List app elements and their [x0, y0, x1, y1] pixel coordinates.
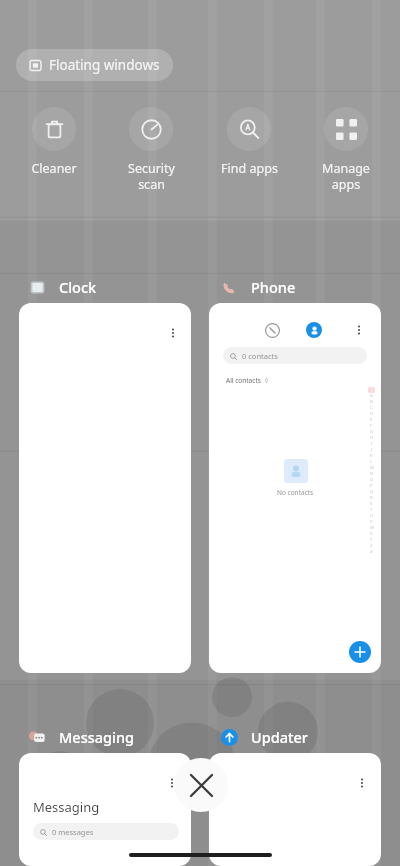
button[interactable]: Floating windows: [16, 49, 173, 81]
button[interactable]: Phone: [219, 275, 298, 299]
staticText: L: [370, 459, 373, 465]
button[interactable]: More options: [351, 322, 367, 338]
staticText: E: [370, 417, 373, 423]
button[interactable]: More options: [354, 775, 370, 791]
button[interactable]: More options: [19, 303, 191, 673]
staticText: P: [370, 483, 373, 489]
staticText: Cleaner: [31, 160, 77, 177]
staticText: F: [370, 423, 373, 429]
button[interactable]: Updater: [219, 725, 310, 749]
staticText: All contacts: [226, 376, 261, 385]
staticText: #: [370, 549, 373, 555]
staticText: K: [370, 453, 373, 459]
staticText: 0 contacts: [242, 351, 278, 361]
button[interactable]: Clock: [27, 275, 99, 299]
button[interactable]: Close all: [174, 758, 228, 812]
staticText: Security scan: [128, 160, 175, 192]
staticText: B: [370, 399, 373, 405]
button[interactable]: Security scan: [108, 103, 194, 192]
button[interactable]: Contacts: [306, 322, 322, 338]
staticText: Find apps: [221, 160, 278, 177]
button[interactable]: All contacts: [224, 374, 271, 387]
staticText: R: [370, 495, 373, 501]
button[interactable]: Recents: [209, 303, 381, 673]
button[interactable]: Find apps: [206, 103, 292, 177]
staticText: M: [370, 465, 374, 471]
button[interactable]: Recents: [265, 323, 280, 338]
staticText: 0 messages: [52, 827, 94, 837]
button[interactable]: More options: [164, 775, 180, 791]
staticText: Manage apps: [322, 160, 370, 192]
staticText: Messaging: [33, 798, 100, 816]
staticText: J: [371, 447, 373, 453]
button[interactable]: Manage apps: [303, 103, 389, 192]
staticText: Clock: [59, 277, 97, 297]
staticText: Z: [370, 543, 373, 549]
staticText: H: [370, 435, 374, 441]
staticText: C: [370, 405, 373, 411]
staticText: O: [370, 477, 374, 483]
staticText: Messaging: [59, 727, 135, 747]
staticText: D: [370, 411, 374, 417]
staticText: W: [370, 525, 374, 531]
button[interactable]: 0 messages: [33, 823, 179, 840]
staticText: Floating windows: [49, 56, 160, 74]
staticText: I: [371, 441, 373, 447]
staticText: Q: [370, 489, 374, 495]
button[interactable]: 0 contacts: [223, 347, 367, 364]
staticText: S: [370, 501, 373, 507]
button[interactable]: Cleaner: [11, 103, 97, 177]
staticText: Phone: [251, 277, 296, 297]
staticText: N: [370, 471, 374, 477]
button[interactable]: Add contact: [349, 641, 371, 663]
staticText: V: [370, 519, 373, 525]
staticText: A: [370, 393, 373, 399]
staticText: Updater: [251, 727, 308, 747]
button[interactable]: More options: [209, 753, 381, 866]
staticText: G: [370, 429, 374, 435]
button[interactable]: More options: [165, 325, 181, 341]
staticText: No contacts: [277, 488, 314, 497]
staticText: Y: [370, 537, 373, 543]
staticText: T: [370, 507, 373, 513]
button[interactable]: Messaging: [27, 725, 137, 749]
button[interactable]: More options: [19, 753, 191, 866]
staticText: X: [370, 531, 373, 537]
staticText: U: [370, 513, 374, 519]
